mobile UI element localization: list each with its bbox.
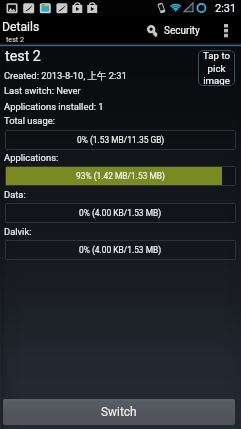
staticText: Created: 2013-8-10, 上午 2:31 (4, 70, 127, 82)
staticText: 0% (4.00 KB/1.53 MB) (79, 208, 162, 218)
staticText: Data: (4, 189, 26, 200)
staticText: 0% (4.00 KB/1.53 MB) (79, 245, 162, 255)
button[interactable]: Security (147, 16, 213, 45)
staticText: test 2 (6, 35, 25, 43)
staticText: Tap to pick image (203, 50, 230, 86)
button[interactable]: Tap to pick image (198, 50, 235, 86)
staticText: Security (164, 25, 200, 37)
staticText: Last switch: Never (4, 85, 81, 96)
staticText: 93% (1.42 MB/1.53 MB) (76, 171, 165, 181)
staticText: Applications installed: 1 (4, 101, 104, 112)
button[interactable]: Switch (3, 399, 235, 425)
staticText: 0% (1.53 MB/11.35 GB) (77, 135, 165, 145)
button[interactable]: More options (215, 16, 236, 45)
staticText: 2:31 (215, 2, 237, 15)
staticText: Applications: (4, 152, 59, 163)
staticText: Total usage: (4, 115, 55, 126)
staticText: test 2 (5, 48, 41, 65)
staticText: Dalvik: (4, 226, 32, 237)
staticText: Switch (101, 405, 137, 419)
staticText: Details (2, 20, 40, 34)
